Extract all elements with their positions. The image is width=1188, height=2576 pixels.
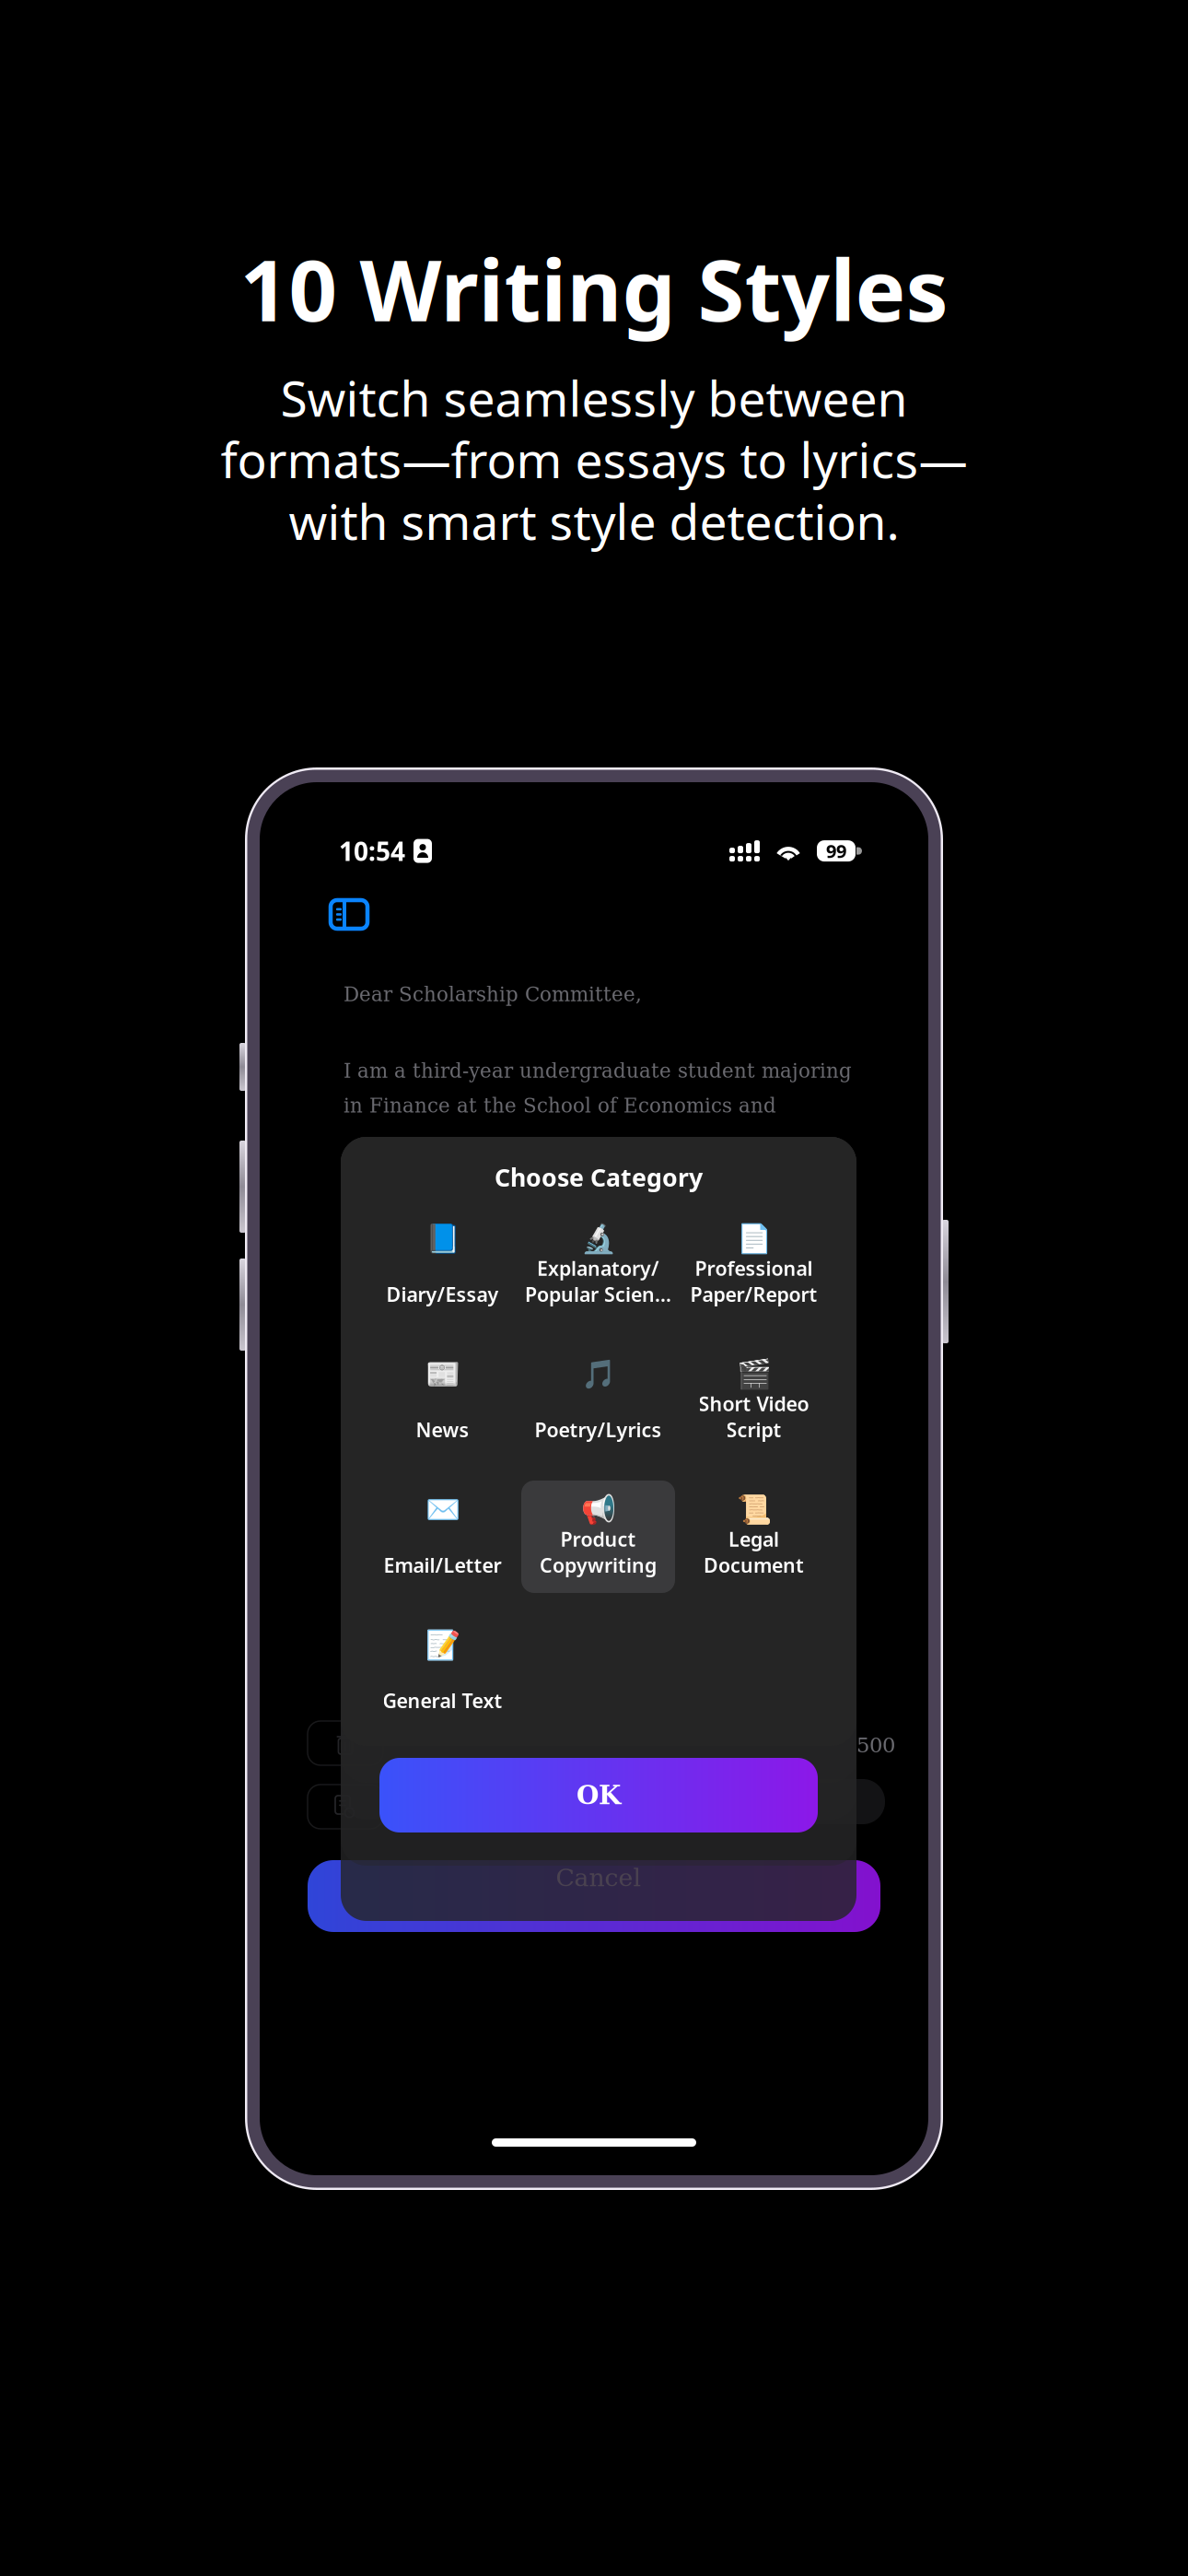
staticText: Copywriting	[540, 1552, 657, 1578]
button[interactable]: Toggle sidebar	[331, 900, 367, 929]
button[interactable]: Generate	[308, 1860, 880, 1932]
staticText: Explanatory/	[537, 1255, 659, 1281]
button[interactable]: ✉️	[365, 1481, 520, 1593]
staticText: 🎬	[736, 1358, 771, 1390]
button[interactable]: Delete	[308, 1721, 383, 1765]
staticText: Choose Category	[495, 1161, 703, 1193]
staticText: 📝	[425, 1629, 460, 1661]
staticText: Legal	[728, 1526, 779, 1552]
staticText: 99	[826, 839, 846, 863]
button[interactable]: 📘	[365, 1210, 520, 1322]
staticText: Script	[726, 1417, 781, 1443]
staticText: Document	[704, 1552, 804, 1578]
staticText: Dear Scholarship Committee,	[344, 983, 642, 1006]
staticText: Short Video	[699, 1391, 809, 1417]
staticText: in Finance at the School of Economics an…	[344, 1094, 776, 1117]
staticText: 📰	[425, 1358, 460, 1390]
button[interactable]: Cancel	[341, 1859, 856, 1896]
staticText: with smart style detection.	[289, 488, 899, 553]
staticText: Email/Letter	[384, 1552, 501, 1578]
staticText: General Text	[383, 1688, 502, 1714]
staticText: 📜	[736, 1493, 771, 1526]
button[interactable]: 📢	[520, 1481, 676, 1593]
staticText: OK	[577, 1780, 621, 1810]
staticText: Switch seamlessly between	[280, 365, 908, 430]
staticText: Popular Scien...	[525, 1281, 671, 1307]
button[interactable]: 🎬	[676, 1345, 832, 1458]
staticText: Product	[560, 1526, 636, 1552]
staticText: 10 Writing Styles	[240, 232, 948, 345]
staticText: Cancel	[556, 1863, 641, 1892]
staticText: Paper/Report	[690, 1281, 817, 1307]
staticText: 500	[856, 1733, 895, 1757]
staticText: I am a third-year undergraduate student …	[344, 1059, 852, 1082]
staticText: 📢	[581, 1493, 616, 1526]
staticText: 🔬	[581, 1223, 616, 1255]
staticText: Professional	[695, 1255, 813, 1281]
button[interactable]: 🎵	[520, 1345, 676, 1458]
button[interactable]: Find in document	[308, 1785, 383, 1829]
staticText: 📄	[736, 1223, 771, 1255]
staticText: News	[416, 1417, 469, 1443]
button[interactable]: 📜	[676, 1481, 832, 1593]
button[interactable]: 🔬	[520, 1210, 676, 1322]
staticText: 📘	[425, 1223, 460, 1255]
staticText: Poetry/Lyrics	[535, 1417, 662, 1443]
button[interactable]: 📝	[365, 1616, 520, 1728]
staticText: 10:54	[339, 834, 405, 868]
button[interactable]: 📄	[676, 1210, 832, 1322]
staticText: formats—from essays to lyrics—	[221, 427, 967, 492]
staticText: 🎵	[581, 1358, 616, 1390]
button[interactable]: OK	[379, 1758, 818, 1832]
staticText: Diary/Essay	[386, 1281, 499, 1307]
button[interactable]: 📰	[365, 1345, 520, 1458]
staticText: ✉️	[425, 1493, 460, 1526]
